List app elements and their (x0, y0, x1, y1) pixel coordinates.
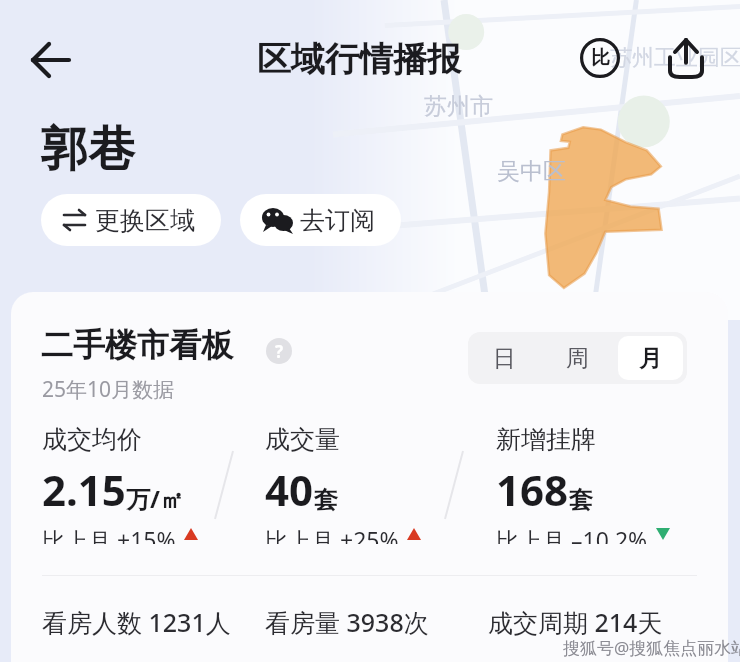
staticText: 成交均价 (42, 424, 142, 455)
staticText: 月 (639, 344, 662, 373)
staticText: 郭巷 (41, 120, 135, 179)
button[interactable]: 去订阅 (240, 194, 401, 246)
staticText: 看房人数 1231人 (42, 605, 231, 639)
staticText: 搜狐号@搜狐焦点丽水站 (563, 636, 740, 659)
staticText: 吴中区 (497, 157, 566, 186)
staticText: 日 (493, 344, 516, 373)
staticText: ? (275, 340, 284, 363)
button[interactable]: Help (264, 336, 294, 366)
staticText: 168 (496, 461, 569, 518)
staticText: 比上月 +15% (42, 524, 176, 544)
staticText: 成交量 (265, 424, 340, 455)
staticText: 成交周期 214天 (488, 605, 663, 639)
staticText: 二手楼市看板 (41, 325, 233, 365)
staticText: 苏州市 (424, 92, 493, 121)
staticText: 周 (566, 344, 589, 373)
staticText: 2.15 (42, 461, 126, 518)
staticText: 比 (591, 46, 610, 70)
staticText: 40 (265, 461, 314, 518)
button[interactable]: 更换区域 (41, 194, 221, 246)
staticText: 去订阅 (300, 205, 375, 236)
staticText: 25年10月数据 (42, 375, 175, 404)
staticText: 区域行情播报 (257, 38, 461, 81)
button[interactable]: Back (18, 32, 82, 88)
staticText: 套 (569, 485, 593, 515)
staticText: 苏州工业园区 (610, 44, 740, 72)
button[interactable]: 月 (618, 336, 683, 380)
staticText: 套 (314, 485, 338, 515)
staticText: 万/㎡ (126, 482, 184, 515)
button[interactable]: Compare (574, 32, 626, 84)
staticText: 看房量 3938次 (265, 605, 429, 639)
button[interactable]: 周 (545, 336, 610, 380)
staticText: 更换区域 (95, 205, 195, 236)
staticText: 比上月 –10.2% (496, 524, 648, 544)
button[interactable]: 日 (472, 336, 537, 380)
staticText: 比上月 +25% (265, 524, 399, 544)
button[interactable]: Share (658, 30, 714, 86)
staticText: 新增挂牌 (496, 424, 596, 455)
